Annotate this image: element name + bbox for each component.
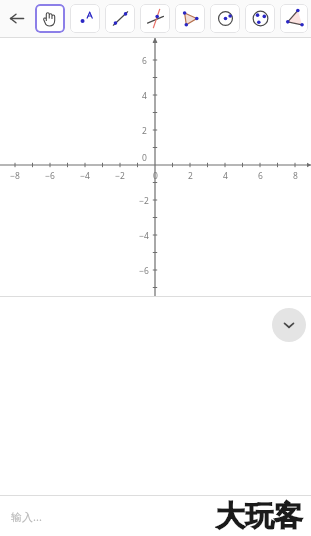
button[interactable]: Tool (210, 4, 240, 33)
button[interactable]: Collapse (272, 308, 306, 342)
staticText: −2 (115, 170, 125, 182)
staticText: 4 (142, 90, 147, 102)
staticText: −6 (139, 265, 149, 277)
staticText: −2 (139, 195, 149, 207)
staticText: 4 (223, 170, 228, 182)
staticText: 0 (153, 170, 158, 182)
button[interactable]: Back (0, 0, 33, 37)
staticText: 2 (188, 170, 193, 182)
staticText: 6 (258, 170, 263, 182)
staticText: 8 (293, 170, 298, 182)
button[interactable]: Tool (175, 4, 205, 33)
button[interactable]: Tool (245, 4, 275, 33)
staticText: −6 (45, 170, 55, 182)
button[interactable]: Tool (70, 4, 100, 33)
staticText: −8 (10, 170, 20, 182)
staticText: −4 (139, 230, 149, 242)
staticText: 0 (142, 152, 147, 164)
staticText: −4 (80, 170, 90, 182)
button[interactable]: Tool (105, 4, 135, 33)
staticText: 输入... (11, 509, 42, 524)
staticText: 2 (142, 125, 147, 137)
staticText: 6 (142, 55, 147, 67)
button[interactable]: Tool (140, 4, 170, 33)
staticText: 大玩客 (216, 498, 303, 535)
button[interactable]: 输入... (0, 496, 311, 536)
button[interactable]: Tool (280, 4, 308, 33)
button[interactable]: Tool (35, 4, 65, 33)
